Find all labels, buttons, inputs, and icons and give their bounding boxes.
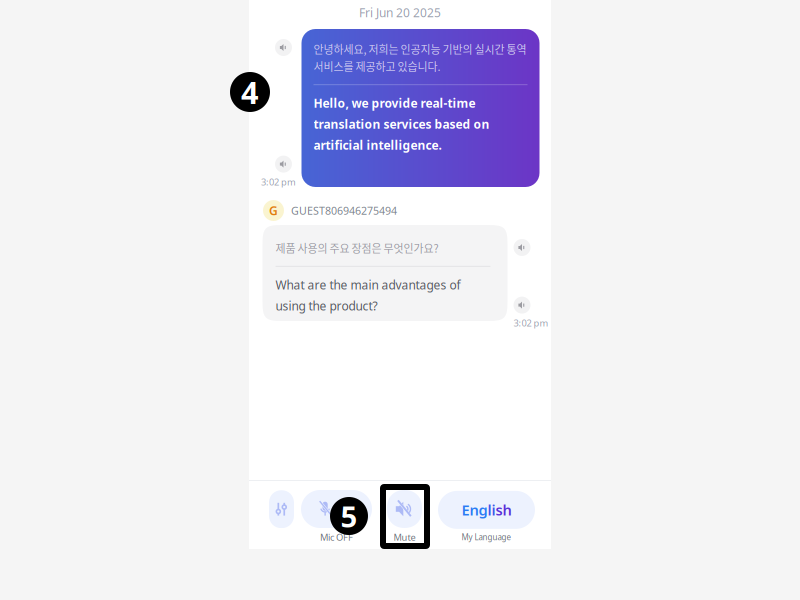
staticText: 제품 사용의 주요 장점은 무엇인가요?: [275, 240, 438, 256]
staticText: li: [487, 500, 495, 520]
staticText: Eng: [461, 500, 487, 520]
staticText: What are the main advantages of using th…: [275, 277, 460, 314]
button[interactable]: Play translation: [275, 39, 292, 56]
staticText: 3:02 pm: [513, 317, 548, 329]
button[interactable]: Play translation: [513, 239, 530, 256]
staticText: Fri Jun 20 2025: [359, 4, 441, 20]
button[interactable]: Play translation: [275, 156, 292, 173]
staticText: G: [269, 202, 278, 218]
button[interactable]: Mic OFF: [301, 490, 372, 543]
button[interactable]: Eng: [438, 491, 535, 542]
staticText: My Language: [461, 532, 511, 542]
staticText: 5: [340, 496, 357, 535]
staticText: sh: [495, 500, 511, 520]
button[interactable]: Play translation: [513, 297, 530, 314]
staticText: 3:02 pm: [261, 176, 296, 188]
button[interactable]: Mute: [387, 490, 422, 543]
staticText: Mic OFF: [320, 531, 353, 543]
button[interactable]: Audio settings: [269, 490, 294, 543]
staticText: 안녕하세요, 저희는 인공지능 기반의 실시간 통역 서비스를 제공하고 있습니…: [313, 41, 526, 74]
staticText: GUEST806946275494: [291, 203, 397, 218]
staticText: 4: [241, 72, 259, 112]
staticText: Hello, we provide real-time translation …: [313, 95, 489, 153]
staticText: Mute: [393, 531, 415, 543]
